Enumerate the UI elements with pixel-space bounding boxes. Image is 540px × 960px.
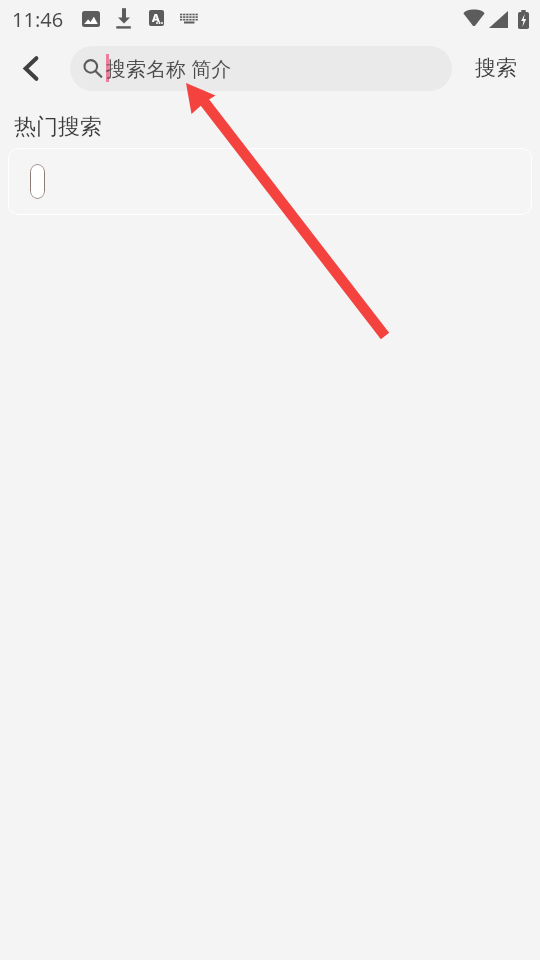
staticText: 热门搜索 [14,113,102,141]
button[interactable]: Hot search keyword [30,164,45,199]
staticText: 搜索 [475,55,517,81]
button[interactable]: 搜索名称 简介 [70,46,452,91]
staticText: A [152,10,160,25]
button[interactable]: Back [0,38,62,98]
button[interactable]: 搜索 [452,38,540,98]
staticText: 搜索名称 简介 [106,55,232,82]
staticText: 11:46 [12,6,64,33]
